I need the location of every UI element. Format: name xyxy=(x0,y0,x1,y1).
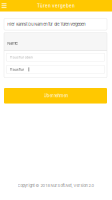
button[interactable]: Übernehmen xyxy=(4,88,107,103)
button[interactable]: Hausflur xyxy=(6,65,105,73)
button[interactable]: Menu xyxy=(0,0,9,11)
staticText: Name: xyxy=(7,41,18,46)
staticText: Hausflur xyxy=(10,67,24,72)
staticText: Hier kannst Du Namen für die Türen verge… xyxy=(7,22,85,27)
staticText: Übernehmen xyxy=(43,93,67,98)
staticText: Türen vergeben xyxy=(37,3,75,8)
staticText: Copyright © 2018 NurSoft.Net, Version 2.… xyxy=(17,183,94,188)
staticText: Hausflur oben xyxy=(10,55,33,59)
button[interactable]: Hausflur oben xyxy=(6,53,105,61)
